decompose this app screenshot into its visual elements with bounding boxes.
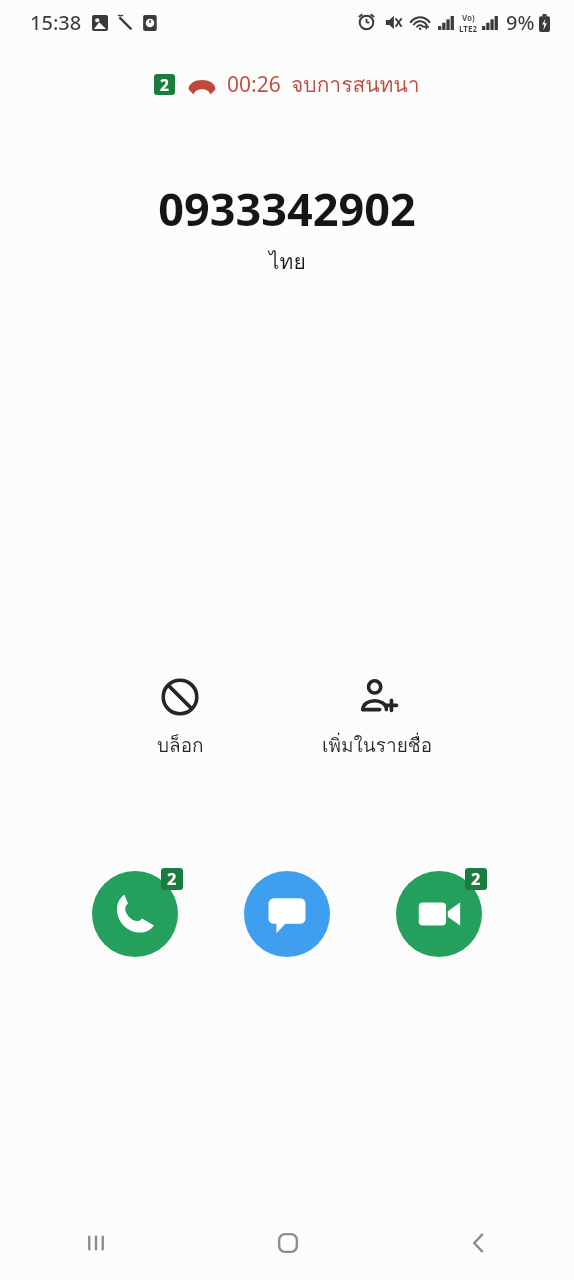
button[interactable]: Message: [239, 866, 335, 962]
staticText: 9%: [506, 9, 535, 36]
staticText: 2: [160, 74, 169, 95]
button[interactable]: Home: [192, 1206, 383, 1280]
staticText: 2: [471, 868, 481, 890]
button[interactable]: Back: [383, 1206, 574, 1280]
button[interactable]: เพิ่มในรายชื่อ: [270, 672, 485, 764]
button[interactable]: Recents: [0, 1206, 192, 1280]
button[interactable]: Call: [87, 866, 183, 962]
button[interactable]: Video call: [391, 866, 487, 962]
staticText: 2: [167, 868, 177, 890]
staticText: จบการสนทนา: [291, 68, 420, 101]
button[interactable]: บล็อก: [90, 672, 270, 764]
staticText: 0933342902: [158, 178, 416, 239]
staticText: เพิ่มในรายชื่อ: [322, 730, 433, 760]
staticText: LTE2: [459, 23, 477, 34]
staticText: ไทย: [269, 245, 306, 278]
staticText: 15:38: [30, 9, 82, 36]
staticText: บล็อก: [157, 730, 204, 760]
staticText: 00:26: [227, 70, 281, 99]
staticText: Vo): [462, 12, 475, 23]
